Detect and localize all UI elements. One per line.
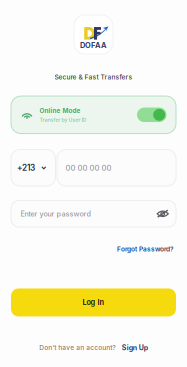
button[interactable]: Forgot Password? <box>117 245 174 253</box>
staticText: 00 00 00 00 <box>65 163 111 172</box>
staticText: +213 <box>17 163 35 173</box>
staticText: Online Mode <box>39 107 80 114</box>
staticText: Don't have an account? <box>39 344 115 352</box>
staticText: Enter your password <box>20 209 90 218</box>
staticText: Log In <box>82 298 104 307</box>
staticText: Sign Up <box>122 343 148 352</box>
staticText: DOFAA <box>80 41 107 50</box>
button[interactable]: Log In <box>11 288 176 316</box>
button[interactable]: Sign Up <box>115 343 148 352</box>
staticText: Transfer by User ID <box>39 117 86 123</box>
staticText: Secure & Fast Transfers <box>54 73 132 81</box>
staticText: Forgot Password? <box>117 245 174 253</box>
